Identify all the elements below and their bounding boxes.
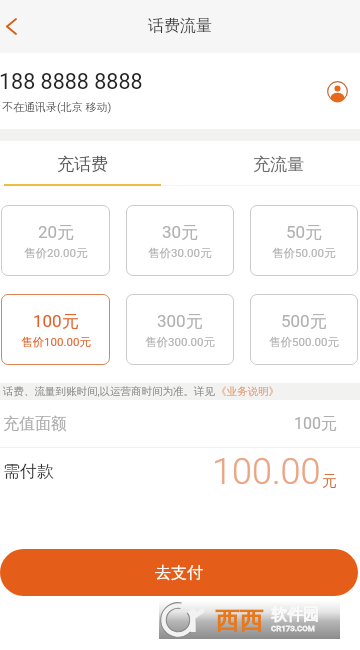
staticText: 不在通讯录(北京 移动)	[2, 100, 112, 114]
staticText: 500元	[281, 311, 327, 332]
staticText: 去支付	[155, 563, 203, 583]
button[interactable]: 《业务说明》	[216, 385, 279, 398]
staticText: 100元	[294, 414, 337, 434]
staticText: 30元	[162, 222, 199, 243]
staticText: 需付款	[3, 461, 54, 482]
staticText: 充值面额	[3, 414, 67, 434]
staticText: 20元	[38, 222, 75, 243]
button[interactable]: Contacts	[322, 76, 352, 106]
staticText: 售价500.00元	[269, 335, 339, 349]
staticText: 话费、流量到账时间,以运营商时间为准。详见	[3, 385, 216, 398]
staticText: 软件园	[271, 605, 319, 625]
staticText: 充话费	[57, 154, 108, 175]
staticText: 售价20.00元	[24, 246, 88, 260]
staticText: 售价50.00元	[272, 246, 336, 260]
staticText: 充流量	[253, 154, 304, 175]
button[interactable]: 300元	[126, 294, 234, 365]
button[interactable]: 30元	[126, 205, 234, 276]
button[interactable]: 充话费	[0, 141, 180, 186]
staticText: 西西	[215, 606, 263, 636]
staticText: 188 8888 8888	[0, 69, 143, 94]
staticText: 售价100.00元	[21, 335, 91, 349]
button[interactable]: 20元	[1, 205, 110, 276]
staticText: 元	[322, 472, 337, 491]
staticText: CR173.COM	[271, 624, 315, 633]
button[interactable]: 去支付	[0, 549, 358, 596]
staticText: 售价300.00元	[145, 335, 215, 349]
button[interactable]: 100元	[1, 294, 110, 365]
button[interactable]: 500元	[250, 294, 358, 365]
button[interactable]: 充流量	[180, 141, 360, 186]
staticText: 话费流量	[148, 16, 212, 36]
staticText: 100元	[33, 311, 79, 332]
button[interactable]: 50元	[250, 205, 358, 276]
staticText: 100.00	[212, 451, 321, 493]
staticText: 50元	[286, 222, 323, 243]
button[interactable]: Back	[0, 0, 28, 53]
staticText: 300元	[157, 311, 203, 332]
staticText: 售价30.00元	[148, 246, 212, 260]
